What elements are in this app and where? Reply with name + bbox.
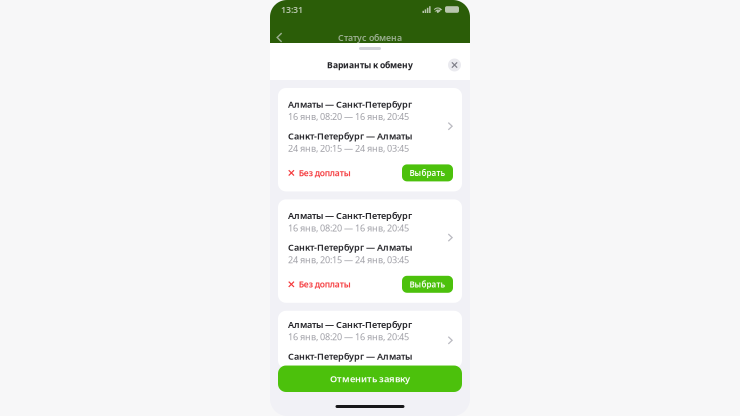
staticText: Алматы — Санкт-Петербург [288,318,412,331]
staticText: Отменить заявку [330,372,410,385]
staticText: Алматы — Санкт-Петербург [288,209,412,222]
staticText: Санкт-Петербург — Алматы [288,130,412,142]
staticText: Выбрать [409,167,445,178]
staticText: 24 янв, 20:15 — 24 янв, 03:45 [288,253,409,266]
staticText: Без доплаты [299,278,351,290]
staticText: 16 янв, 08:20 — 16 янв, 20:45 [288,222,409,234]
button[interactable]: Алматы — Санкт-Петербург [278,311,462,368]
button[interactable]: Алматы — Санкт-Петербург [278,88,462,191]
staticText: Варианты к обмену [327,59,413,71]
button[interactable]: Отменить заявку [278,365,462,392]
staticText: Выбрать [409,279,445,290]
button[interactable]: Close [448,58,461,71]
staticText: 16 янв, 08:20 — 16 янв, 20:45 [288,331,409,343]
staticText: Без доплаты [299,167,351,179]
button[interactable]: Back [272,30,286,44]
staticText: Статус обмена [338,31,402,43]
button[interactable]: Выбрать [402,164,453,181]
staticText: Санкт-Петербург — Алматы [288,350,412,362]
staticText: Санкт-Петербург — Алматы [288,241,412,253]
staticText: 24 янв, 20:15 — 24 янв, 03:45 [288,142,409,154]
staticText: 13:31 [281,3,303,15]
staticText: 16 янв, 08:20 — 16 янв, 20:45 [288,110,409,123]
button[interactable]: Выбрать [402,276,453,293]
staticText: Алматы — Санкт-Петербург [288,98,412,110]
button[interactable]: Алматы — Санкт-Петербург [278,199,462,303]
